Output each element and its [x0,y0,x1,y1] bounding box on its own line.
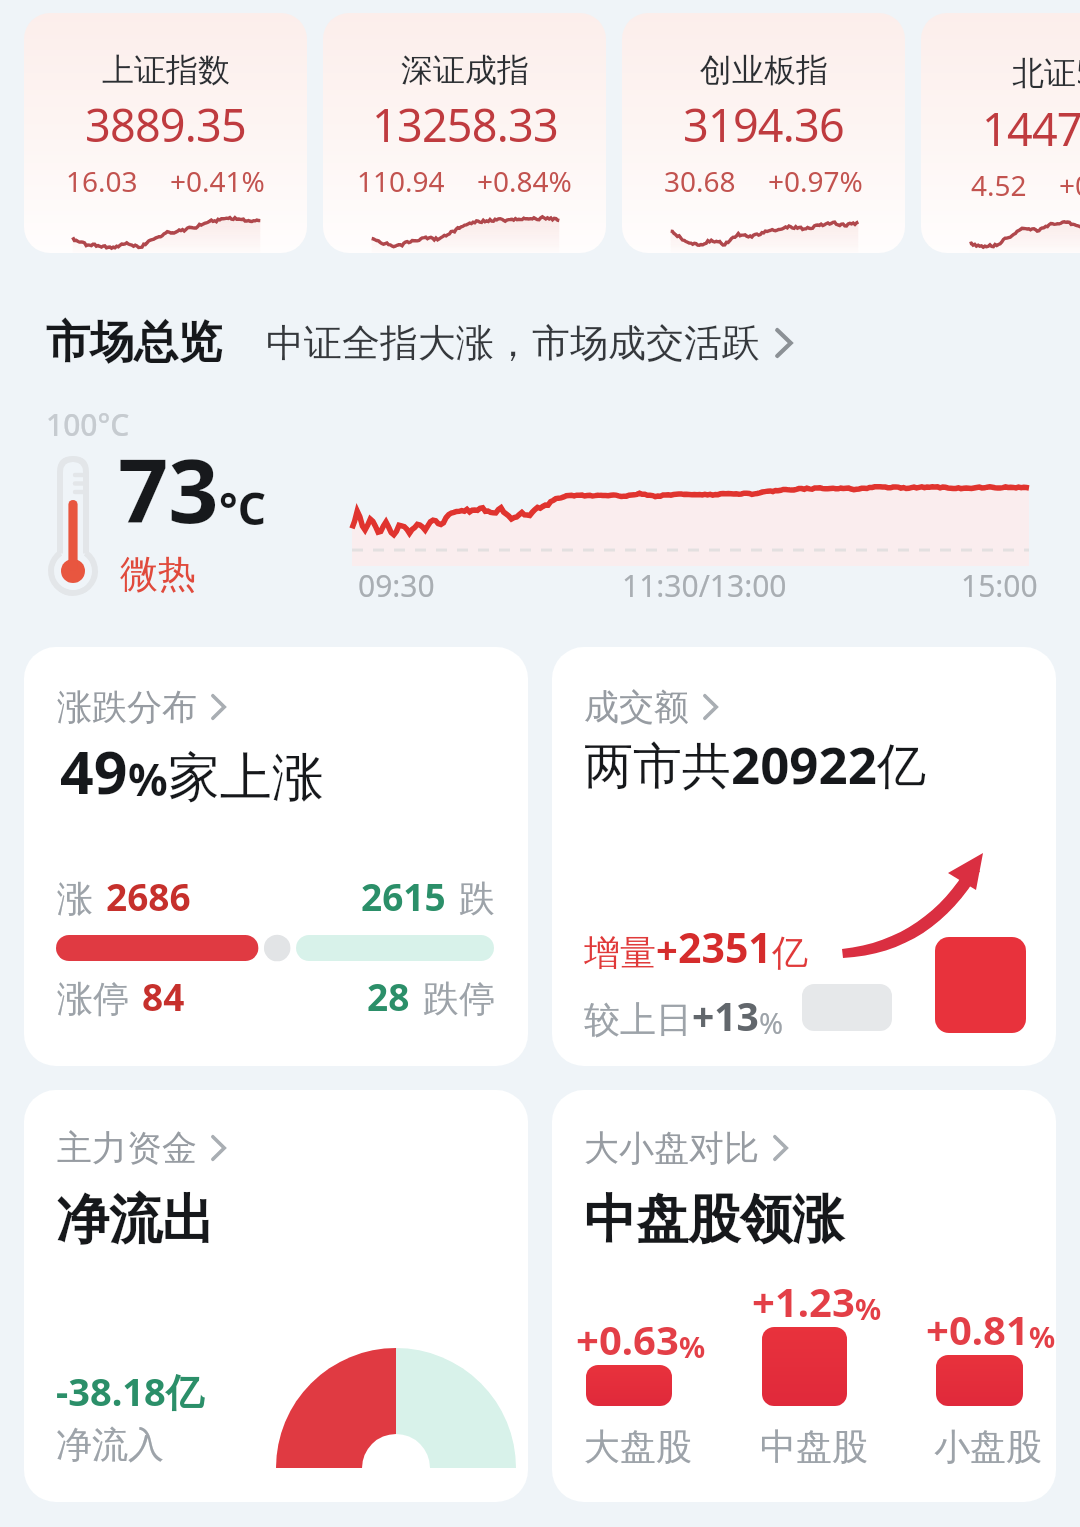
staticText: 较上日 [584,997,692,1042]
button[interactable]: 主力资金 [24,1090,528,1502]
staticText: 100°C [46,404,130,445]
button[interactable]: 涨跌分布 [57,685,230,729]
staticText: 4.52 [971,166,1027,204]
staticText: 49 [60,731,128,811]
staticText: 小盘股 [934,1424,1042,1469]
staticText: 净流出 [56,1187,215,1254]
button[interactable]: 大小盘对比 [552,1090,1056,1502]
staticText: 涨跌分布 [57,685,197,729]
staticText: 增量 [584,930,656,975]
staticText: +0.41% [170,162,265,200]
staticText: % [128,749,168,809]
staticText: +0.63 [576,1312,679,1366]
staticText: 微热 [120,550,196,598]
staticText: % [1029,1317,1056,1356]
staticText: °C [219,478,266,538]
staticText: 主力资金 [57,1126,197,1170]
staticText: 15:00 [961,565,1038,606]
button[interactable]: 成交额 [552,647,1056,1066]
button[interactable]: 成交额 [584,685,722,729]
staticText: +0.81 [926,1302,1029,1356]
button[interactable]: 市场总览 [46,315,798,370]
button[interactable]: 深证成指 [323,13,606,253]
staticText: 30.68 [664,162,736,200]
staticText: % [759,1003,784,1042]
staticText: +0.31% [1059,166,1080,204]
staticText: % [679,1327,706,1366]
button[interactable]: 北证50 [921,13,1080,253]
staticText: 创业板指 [700,50,828,90]
staticText: 09:30 [358,565,435,606]
button[interactable]: 市场温度与分时走势 [24,396,1056,606]
staticText: 2351 [678,919,772,975]
button[interactable]: 上证指数 [24,13,307,253]
staticText: 2686 [106,871,191,921]
staticText: 13258.33 [372,94,558,155]
button[interactable]: 主力资金 [57,1126,230,1170]
staticText: 3889.35 [85,94,246,155]
staticText: +0.97% [768,162,863,200]
button[interactable]: 大小盘对比 [584,1126,792,1170]
staticText: % [855,1289,882,1328]
staticText: 11:30/13:00 [622,565,787,606]
staticText: 73 [118,429,219,549]
staticText: 20922 [731,729,877,798]
button[interactable]: 创业板指 [622,13,905,253]
staticText: 中盘股 [760,1424,868,1469]
staticText: 3194.36 [683,94,844,155]
staticText: 家上涨 [168,745,324,811]
staticText: 2615 [361,871,446,921]
staticText: 亿 [877,736,926,798]
staticText: 16.03 [66,162,138,200]
staticText: 110.94 [357,162,445,200]
staticText: 深证成指 [401,50,529,90]
staticText: -38.18亿 [56,1365,204,1417]
staticText: 大盘股 [584,1424,692,1469]
staticText: 亿 [772,930,808,975]
button[interactable]: 涨跌分布 [24,647,528,1066]
staticText: 上证指数 [102,50,230,90]
staticText: 跌 [459,876,495,921]
staticText: 中证全指大涨，市场成交活跃 [266,319,760,367]
staticText: 市场总览 [46,315,222,370]
staticText: 北证50 [1012,50,1080,94]
staticText: 两市共 [584,736,731,798]
staticText: 84 [142,971,185,1021]
staticText: 净流入 [56,1422,164,1467]
staticText: +0.84% [477,162,572,200]
staticText: 28 [367,971,410,1021]
staticText: +1.23 [752,1274,855,1328]
staticText: 涨停 [57,976,129,1021]
staticText: 涨 [57,876,93,921]
staticText: 跌停 [423,976,495,1021]
other: 查看市场总览详情 [772,324,798,362]
staticText: + [656,923,678,975]
staticText: 成交额 [584,685,689,729]
staticText: 大小盘对比 [584,1126,759,1170]
staticText: 1447.55 [982,98,1080,159]
staticText: 中盘股领涨 [584,1187,844,1253]
staticText: +13 [692,989,759,1042]
